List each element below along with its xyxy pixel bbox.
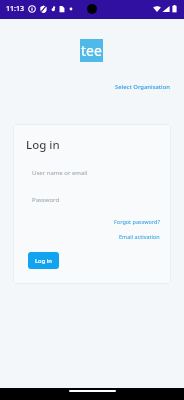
- staticText: Email activation: [119, 233, 160, 240]
- staticText: 11:13: [6, 4, 24, 14]
- staticText: Forgot password?: [114, 218, 160, 225]
- staticText: Log in: [35, 257, 52, 265]
- staticText: Select Organisation: [115, 83, 171, 91]
- staticText: User name or email: [32, 169, 88, 177]
- button[interactable]: tee logo: [80, 39, 103, 62]
- staticText: Log in: [26, 137, 60, 153]
- button[interactable]: User name or email: [24, 163, 160, 182]
- button[interactable]: Email activation: [119, 232, 160, 241]
- staticText: Password: [32, 196, 60, 204]
- button[interactable]: Select Organisation: [115, 81, 171, 93]
- button[interactable]: Password: [24, 190, 160, 209]
- button[interactable]: Forgot password?: [114, 217, 160, 226]
- button[interactable]: Log in: [28, 252, 59, 269]
- staticText: tee: [81, 41, 102, 60]
- button[interactable]: Home: [69, 390, 116, 392]
